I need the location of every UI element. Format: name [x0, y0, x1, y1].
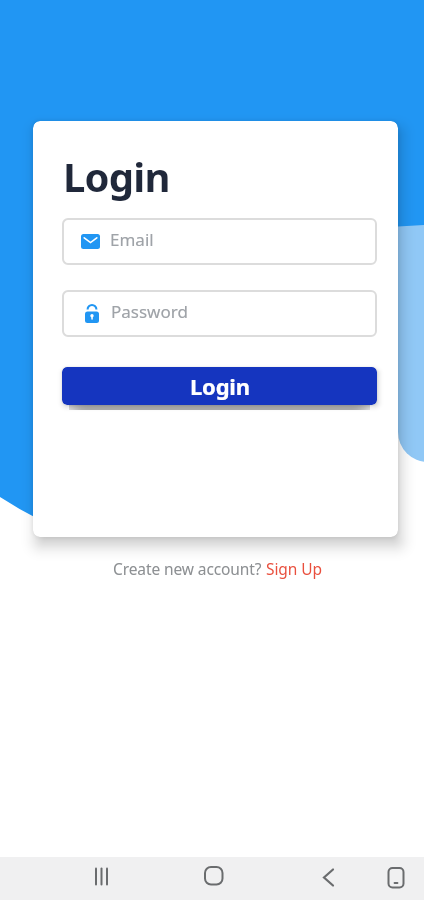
- staticText: Sign Up: [266, 558, 322, 579]
- staticText: Password: [111, 300, 188, 323]
- staticText: Create new account?: [113, 558, 266, 579]
- button[interactable]: Create new account?: [113, 558, 322, 579]
- button[interactable]: Login: [62, 367, 377, 405]
- button[interactable]: [312, 861, 345, 894]
- button[interactable]: Password: [62, 290, 377, 337]
- button[interactable]: [380, 861, 413, 894]
- button[interactable]: [197, 859, 230, 892]
- staticText: Login: [190, 371, 250, 401]
- button[interactable]: [85, 860, 118, 893]
- button[interactable]: Email: [62, 218, 377, 265]
- staticText: Email: [110, 228, 154, 251]
- staticText: Login: [63, 149, 170, 203]
